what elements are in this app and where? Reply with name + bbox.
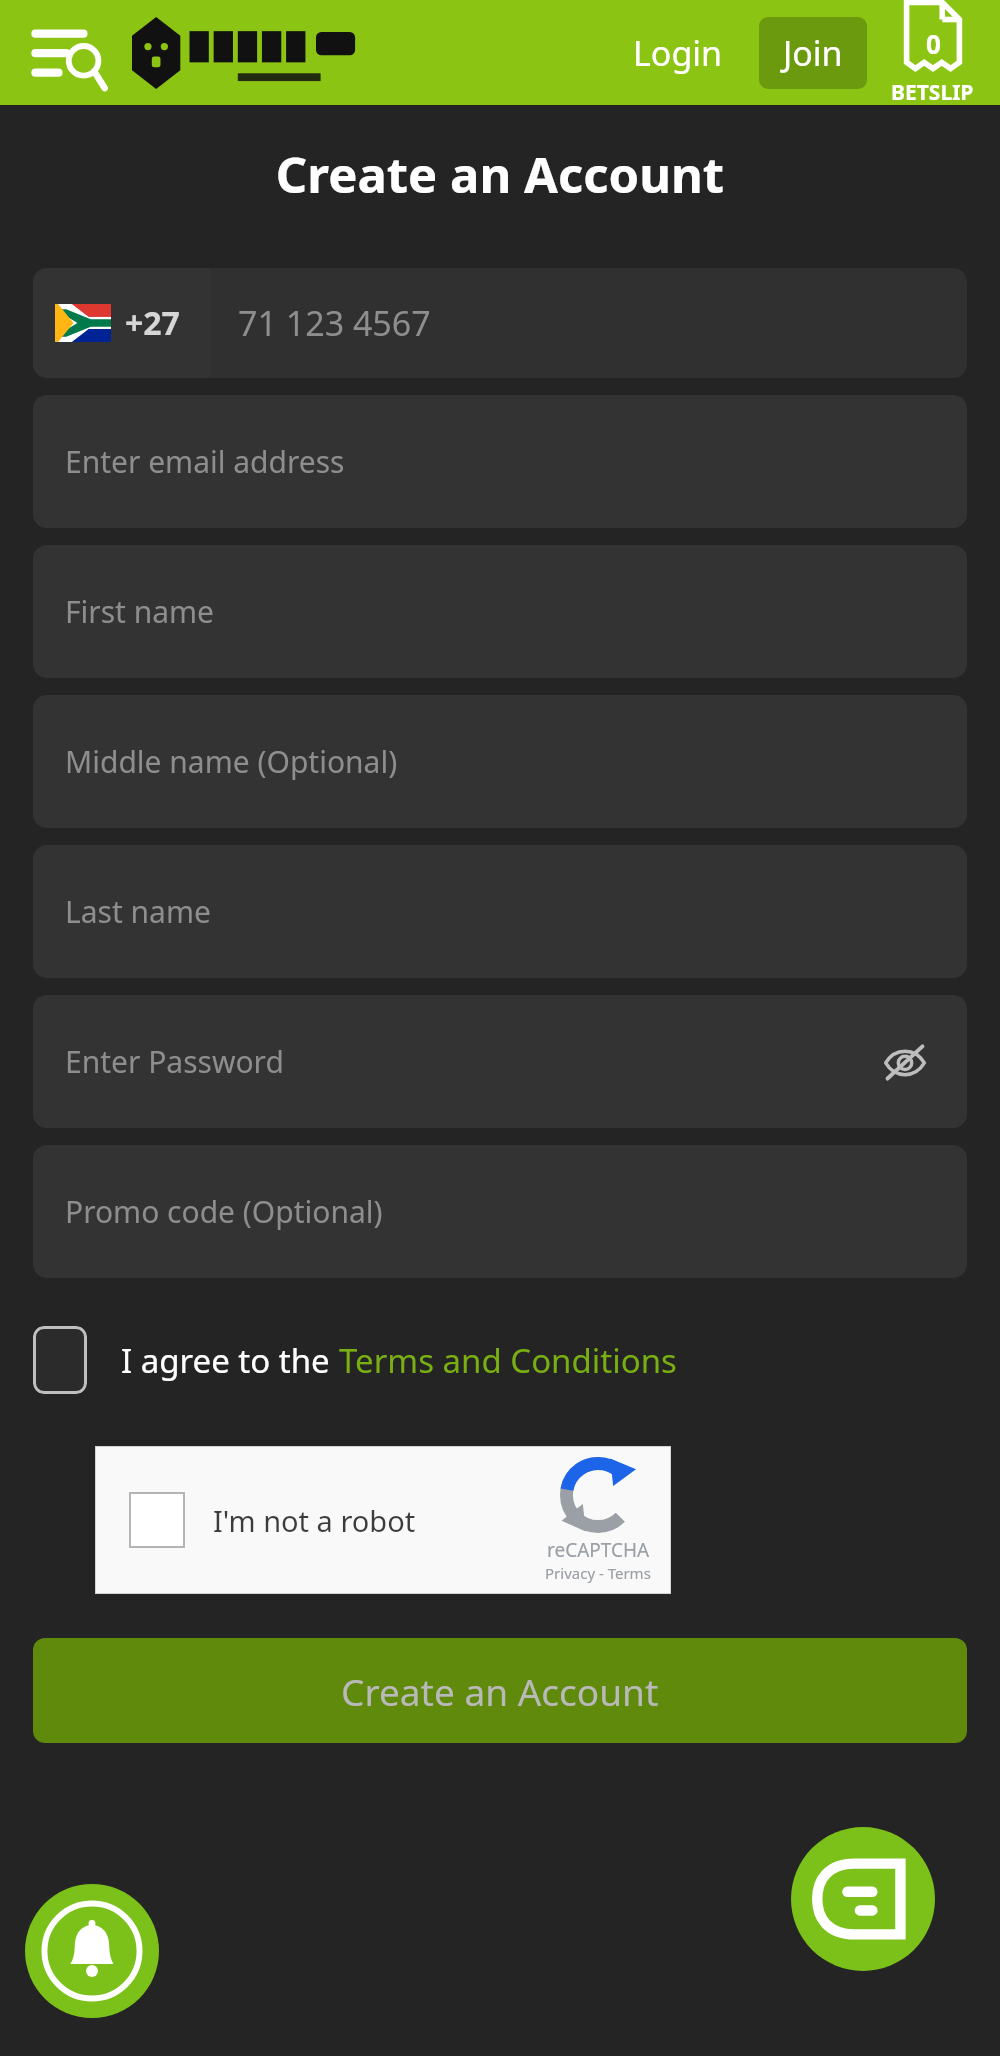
staticText: First name: [65, 591, 215, 632]
button[interactable]: I'm not a robot: [129, 1492, 185, 1548]
button[interactable]: Show password: [875, 1032, 935, 1092]
staticText: Create an Account: [341, 1666, 659, 1716]
staticText: Privacy - Terms: [545, 1563, 651, 1583]
staticText: Promo code (Optional): [65, 1191, 383, 1232]
button[interactable]: Join: [759, 17, 867, 89]
button[interactable]: Betslip: [891, 0, 974, 105]
staticText: Last name: [65, 891, 211, 932]
staticText: Middle name (Optional): [65, 741, 398, 782]
button[interactable]: 71 123 4567: [210, 268, 967, 378]
staticText: Login: [633, 30, 723, 76]
staticText: +27: [125, 301, 180, 345]
button[interactable]: Enter Password: [33, 995, 967, 1128]
button[interactable]: Middle name (Optional): [33, 695, 967, 828]
button[interactable]: Terms and Conditions: [339, 1338, 677, 1383]
button[interactable]: Last name: [33, 845, 967, 978]
staticText: Enter email address: [65, 441, 345, 482]
staticText: I'm not a robot: [213, 1501, 416, 1540]
staticText: 0: [926, 26, 941, 61]
button[interactable]: Notifications: [25, 1884, 159, 2018]
staticText: I agree to the: [121, 1338, 339, 1383]
staticText: Terms and Conditions: [339, 1338, 677, 1383]
staticText: Join: [783, 30, 843, 76]
button[interactable]: Create an Account: [33, 1638, 967, 1743]
button[interactable]: Enter email address: [33, 395, 967, 528]
button[interactable]: Login: [619, 20, 737, 86]
button[interactable]: +27: [33, 268, 210, 378]
staticText: reCAPTCHA: [547, 1537, 650, 1563]
staticText: Create an Account: [33, 141, 967, 208]
staticText: Enter Password: [65, 1041, 284, 1082]
button[interactable]: Live chat: [791, 1827, 935, 1971]
staticText: 71 123 4567: [238, 300, 431, 346]
button[interactable]: Agree to terms checkbox: [33, 1326, 87, 1394]
button[interactable]: Menu and search: [26, 11, 110, 95]
button[interactable]: I'm not a robot: [95, 1446, 671, 1594]
button[interactable]: Promo code (Optional): [33, 1145, 967, 1278]
staticText: BETSLIP: [891, 78, 974, 105]
button[interactable]: Playa Bets home: [132, 14, 362, 92]
button[interactable]: First name: [33, 545, 967, 678]
